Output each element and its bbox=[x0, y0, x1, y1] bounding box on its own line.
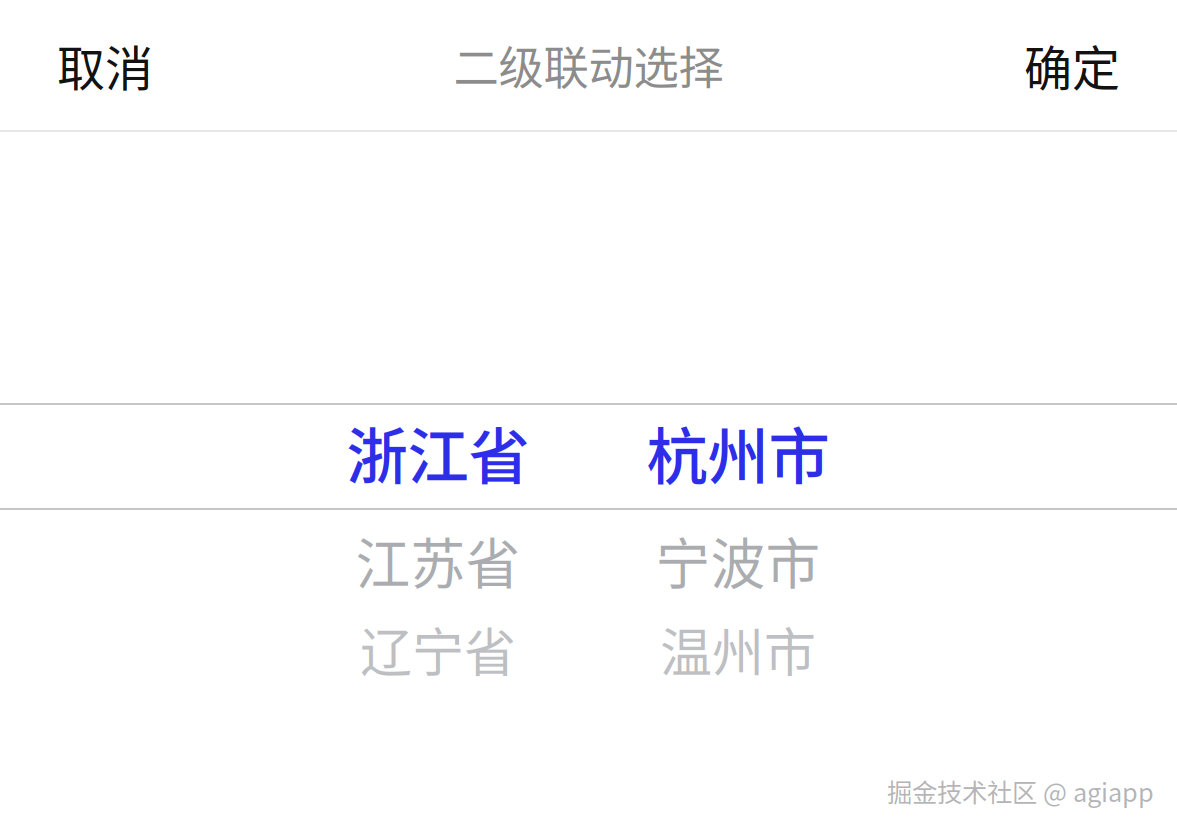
button[interactable]: 宁波市 bbox=[518, 518, 958, 602]
staticText: 宁波市 bbox=[655, 520, 820, 600]
staticText: 江苏省 bbox=[355, 520, 520, 600]
button[interactable]: 浙江省 bbox=[218, 401, 658, 504]
staticText: 取消 bbox=[57, 30, 153, 100]
button[interactable]: 杭州市 bbox=[518, 401, 958, 504]
staticText: 掘金技术社区 @ agiapp bbox=[887, 773, 1154, 809]
staticText: 确定 bbox=[1024, 30, 1120, 100]
staticText: 杭州市 bbox=[646, 408, 829, 497]
button[interactable]: 确定 bbox=[970, 0, 1157, 130]
staticText: 辽宁省 bbox=[360, 611, 516, 687]
button[interactable]: 辽宁省 bbox=[218, 607, 658, 691]
button[interactable]: 取消 bbox=[20, 0, 207, 130]
staticText: 温州市 bbox=[660, 611, 816, 687]
staticText: 浙江省 bbox=[346, 408, 529, 497]
button[interactable]: 温州市 bbox=[518, 607, 958, 691]
button[interactable]: 江苏省 bbox=[218, 518, 658, 602]
staticText: 二级联动选择 bbox=[453, 32, 723, 98]
